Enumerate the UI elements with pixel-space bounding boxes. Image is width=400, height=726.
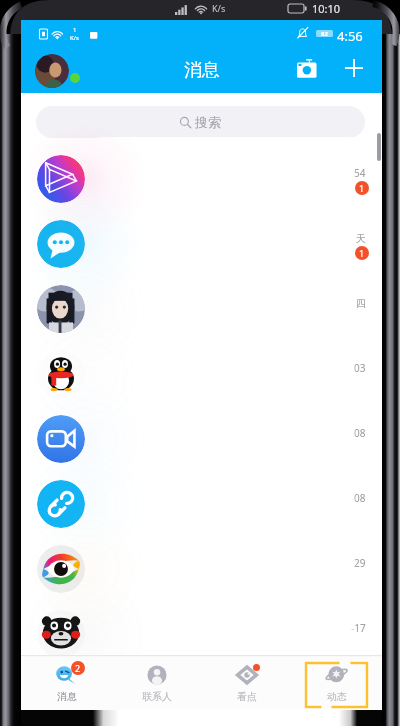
button[interactable]: 08 bbox=[21, 407, 382, 472]
staticText: 2 bbox=[75, 662, 81, 674]
staticText: K/s bbox=[212, 2, 226, 14]
button[interactable]: Add bbox=[337, 51, 371, 85]
staticText: 搜索 bbox=[195, 114, 221, 130]
staticText: 看点 bbox=[237, 690, 257, 703]
button[interactable]: 看点 bbox=[202, 655, 292, 710]
button[interactable]: -17 bbox=[21, 602, 382, 667]
staticText: 消息 bbox=[57, 690, 77, 703]
staticText: 08 bbox=[354, 491, 366, 505]
staticText: 天 bbox=[356, 232, 366, 245]
staticText: 动态 bbox=[327, 690, 347, 703]
staticText: 08 bbox=[354, 426, 366, 440]
staticText: 54 bbox=[354, 166, 366, 180]
staticText: 03 bbox=[354, 361, 366, 375]
staticText: 联系人 bbox=[142, 690, 172, 703]
button[interactable]: Profile bbox=[35, 54, 69, 88]
button[interactable]: 03 bbox=[21, 342, 382, 407]
button[interactable]: 动态 bbox=[292, 655, 382, 710]
staticText: -17 bbox=[351, 621, 366, 635]
button[interactable]: 08 bbox=[21, 472, 382, 537]
button[interactable]: 搜索 bbox=[36, 106, 365, 138]
button[interactable]: 54 bbox=[21, 147, 382, 212]
staticText: 消息 bbox=[184, 59, 220, 82]
button[interactable]: 天 bbox=[21, 212, 382, 277]
button[interactable]: 联系人 bbox=[112, 655, 202, 710]
button[interactable]: Camera bbox=[290, 51, 324, 85]
staticText: 10:10 bbox=[312, 1, 341, 16]
staticText: K/s bbox=[70, 34, 79, 42]
staticText: 1 bbox=[359, 182, 365, 194]
staticText: 82 bbox=[321, 30, 328, 37]
staticText: 1 bbox=[359, 247, 365, 259]
staticText: 29 bbox=[354, 556, 366, 570]
button[interactable]: 2 bbox=[21, 655, 112, 710]
staticText: 4:56 bbox=[337, 27, 363, 45]
button[interactable]: 29 bbox=[21, 537, 382, 602]
button[interactable]: 四 bbox=[21, 277, 382, 342]
staticText: 四 bbox=[356, 297, 366, 310]
staticText: 1 bbox=[73, 26, 77, 34]
